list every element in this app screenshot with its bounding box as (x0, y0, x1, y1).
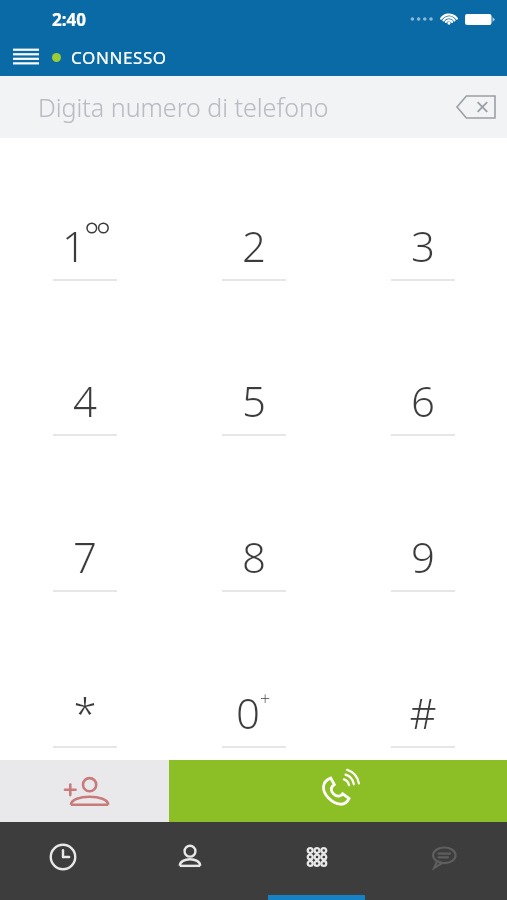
staticText: 9 (411, 528, 435, 585)
button[interactable]: 3 (338, 138, 507, 293)
staticText: # (409, 684, 437, 741)
button[interactable]: 0 (169, 604, 338, 760)
button[interactable]: 9 (338, 448, 507, 604)
staticText: Digita numero di telefono (38, 90, 329, 124)
staticText: 0 (236, 684, 260, 741)
button[interactable]: 5 (169, 293, 338, 448)
button[interactable]: 8 (169, 448, 338, 604)
button[interactable]: Recents (0, 822, 126, 900)
staticText: CONNESSO (71, 46, 167, 69)
button[interactable]: 4 (0, 293, 169, 448)
button[interactable]: Call (169, 760, 507, 822)
staticText: 7 (73, 528, 97, 585)
button[interactable]: # (338, 604, 507, 760)
button[interactable]: Menu (0, 38, 52, 76)
staticText: 2:40 (52, 8, 86, 31)
button[interactable]: Digita numero di telefono (0, 76, 507, 138)
button[interactable]: 1 (0, 138, 169, 293)
staticText: 2 (242, 217, 266, 274)
button[interactable]: Contacts (126, 822, 253, 900)
staticText: 5 (242, 372, 266, 429)
button[interactable]: 7 (0, 448, 169, 604)
staticText: 8 (242, 528, 266, 585)
staticText: * (73, 684, 97, 741)
staticText: 3 (411, 217, 435, 274)
button[interactable]: Backspace (445, 76, 507, 138)
staticText: 4 (73, 372, 97, 429)
button[interactable]: Keypad (253, 822, 380, 900)
button[interactable]: * (0, 604, 169, 760)
button[interactable]: 2 (169, 138, 338, 293)
button[interactable]: 6 (338, 293, 507, 448)
button[interactable]: Add contact (0, 760, 169, 822)
staticText: 1 (62, 217, 86, 274)
staticText: + (260, 686, 271, 711)
button[interactable]: Messages (380, 822, 507, 900)
staticText: 6 (411, 372, 435, 429)
